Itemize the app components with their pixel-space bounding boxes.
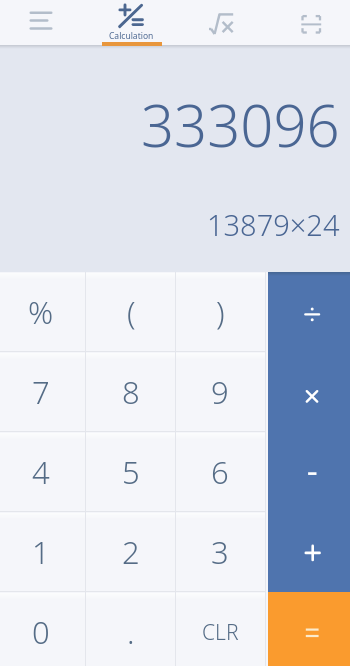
staticText: CLR — [202, 618, 239, 647]
button[interactable]: % — [0, 272, 86, 352]
button[interactable]: ) — [175, 272, 265, 352]
button[interactable]: 1 — [0, 512, 86, 592]
staticText: . — [127, 611, 135, 653]
button[interactable]: equals — [268, 592, 350, 666]
button[interactable]: 0 — [0, 592, 86, 666]
button[interactable]: Scientific functions — [199, 0, 243, 46]
button[interactable]: 2 — [86, 512, 176, 592]
button[interactable]: 7 — [0, 352, 86, 432]
staticText: ) — [216, 291, 225, 333]
staticText: 8 — [122, 371, 140, 413]
staticText: ( — [127, 291, 136, 333]
button[interactable]: 9 — [175, 352, 265, 432]
button[interactable]: . — [86, 592, 176, 666]
staticText: 7 — [32, 371, 50, 413]
staticText: 6 — [211, 451, 229, 493]
button[interactable]: ( — [86, 272, 176, 352]
staticText: Calculation — [109, 30, 154, 42]
staticText: 2 — [122, 531, 140, 573]
button[interactable]: 5 — [86, 432, 176, 512]
staticText: 0 — [32, 611, 50, 653]
staticText: 3 — [211, 531, 229, 573]
button[interactable]: Calculation — [100, 0, 162, 46]
button[interactable]: 3 — [175, 512, 265, 592]
staticText: 4 — [32, 451, 50, 493]
staticText: 1 — [32, 531, 50, 573]
staticText: 9 — [211, 371, 229, 413]
button[interactable]: 4 — [0, 432, 86, 512]
button[interactable]: CLR — [175, 592, 265, 666]
button[interactable]: operator — [268, 272, 350, 352]
button[interactable]: operator — [268, 432, 350, 512]
button[interactable]: 8 — [86, 352, 176, 432]
button[interactable]: operator — [268, 352, 350, 432]
button[interactable]: Menu — [19, 0, 63, 46]
staticText: 5 — [122, 451, 140, 493]
staticText: % — [28, 291, 54, 333]
button[interactable]: Scan — [290, 0, 334, 46]
staticText: 333096 — [141, 85, 340, 164]
button[interactable]: operator — [268, 512, 350, 592]
button[interactable]: 6 — [175, 432, 265, 512]
staticText: 13879×24 — [207, 205, 340, 244]
